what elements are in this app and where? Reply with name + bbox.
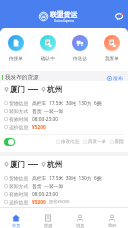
staticText: 高栏车 17.5米 30吨 130方 6捆 <box>32 175 102 182</box>
staticText: 高栏车 17.5米 30吨 130方 6捆 <box>32 100 102 107</box>
staticText: 普货 一装一卸 <box>32 108 64 115</box>
staticText: 厦门 <box>10 160 25 169</box>
button[interactable]: 再发一单 <box>83 139 106 145</box>
staticText: 货物信息 <box>9 175 29 181</box>
staticText: 08:00-23:00 <box>32 116 59 123</box>
staticText: 修改信息 <box>61 139 79 145</box>
staticText: 装卸方式 <box>9 108 29 114</box>
button[interactable]: 待接单 <box>0 35 32 62</box>
staticText: 确认中 <box>41 56 55 62</box>
staticText: 首页 <box>12 223 21 228</box>
button[interactable]: 确认中 <box>32 35 64 62</box>
staticText: 货物信息 <box>9 100 29 106</box>
staticText: 装卸方式 <box>9 183 29 189</box>
staticText: 08:00-23:00 <box>32 191 59 198</box>
staticText: ¥5200 <box>32 124 46 131</box>
button[interactable]: 首页 <box>0 208 32 228</box>
button[interactable]: 我的 <box>96 208 128 228</box>
button[interactable]: 消息 <box>64 208 96 228</box>
staticText: 普货 一装一卸 <box>32 183 64 190</box>
staticText: 厦门 <box>10 85 25 94</box>
staticText: 我发布的货源 <box>5 74 39 81</box>
staticText: 运价信息 <box>9 199 29 205</box>
button[interactable]: Messages <box>114 11 125 22</box>
staticText: 删除 <box>115 139 124 145</box>
button[interactable]: 发布 <box>107 75 123 81</box>
staticText: 原价¥5000 <box>49 199 70 205</box>
staticText: 我的 <box>108 223 117 228</box>
button[interactable]: 厦门 <box>0 81 128 152</box>
staticText: 有效时间 <box>9 191 29 197</box>
staticText: 货源 <box>44 223 53 228</box>
staticText: 我发单 <box>105 56 119 62</box>
staticText: 联盟货运 <box>50 10 78 19</box>
button[interactable]: 厦门 <box>0 156 128 207</box>
staticText: ¥5200 <box>32 199 46 206</box>
staticText: 杭州 <box>47 85 62 94</box>
button[interactable]: 我发单 <box>96 35 128 62</box>
staticText: 消息 <box>76 223 85 228</box>
staticText: 杭州 <box>47 160 62 169</box>
button[interactable]: 修改信息 <box>56 139 79 145</box>
button[interactable]: Toggle online <box>4 138 15 146</box>
staticText: 运价信息 <box>9 124 29 130</box>
staticText: 待接单 <box>9 56 23 62</box>
button[interactable]: 货源 <box>32 208 64 228</box>
staticText: 有效时间 <box>9 116 29 122</box>
staticText: 待送达 <box>73 56 87 62</box>
staticText: Union Express <box>54 19 75 23</box>
staticText: 再发一单 <box>88 139 106 145</box>
button[interactable]: 待送达 <box>64 35 96 62</box>
staticText: 发布 <box>113 75 123 81</box>
button[interactable]: 删除 <box>110 139 124 145</box>
